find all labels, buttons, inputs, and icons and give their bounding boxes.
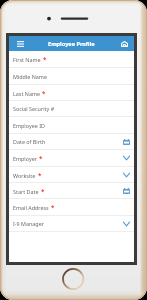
button[interactable]: Middle Name <box>9 68 134 85</box>
staticText: * <box>39 154 43 162</box>
staticText: * <box>38 171 42 179</box>
button[interactable]: Email Address <box>9 199 134 216</box>
button[interactable]: Date of Birth <box>9 134 134 150</box>
staticText: Date of Birth <box>13 138 46 145</box>
staticText: * <box>41 187 45 195</box>
button[interactable]: Employer <box>9 150 134 167</box>
staticText: * <box>43 55 47 63</box>
staticText: * <box>42 89 46 97</box>
staticText: Start Date <box>13 188 39 195</box>
button[interactable]: Last Name <box>9 85 134 101</box>
staticText: Worksite <box>13 172 36 179</box>
button[interactable]: Worksite <box>9 167 134 183</box>
button[interactable]: Menu <box>11 36 29 51</box>
button[interactable]: First Name <box>9 51 134 68</box>
staticText: Social Security # <box>13 105 55 112</box>
staticText: Middle Name <box>13 73 47 80</box>
staticText: Last Name <box>13 90 40 97</box>
button[interactable]: Home <box>116 36 132 51</box>
button[interactable]: Social Security # <box>9 101 134 117</box>
staticText: Employee Profile <box>48 40 95 48</box>
button[interactable]: Employee ID <box>9 117 134 134</box>
staticText: Employer <box>13 155 37 162</box>
staticText: Employee ID <box>13 122 45 129</box>
staticText: First Name <box>13 56 41 63</box>
staticText: Email Address <box>13 204 49 211</box>
button[interactable]: Start Date <box>9 183 134 199</box>
button[interactable]: I-9 Manager <box>9 216 134 232</box>
staticText: * <box>51 203 55 211</box>
staticText: I-9 Manager <box>13 220 44 227</box>
